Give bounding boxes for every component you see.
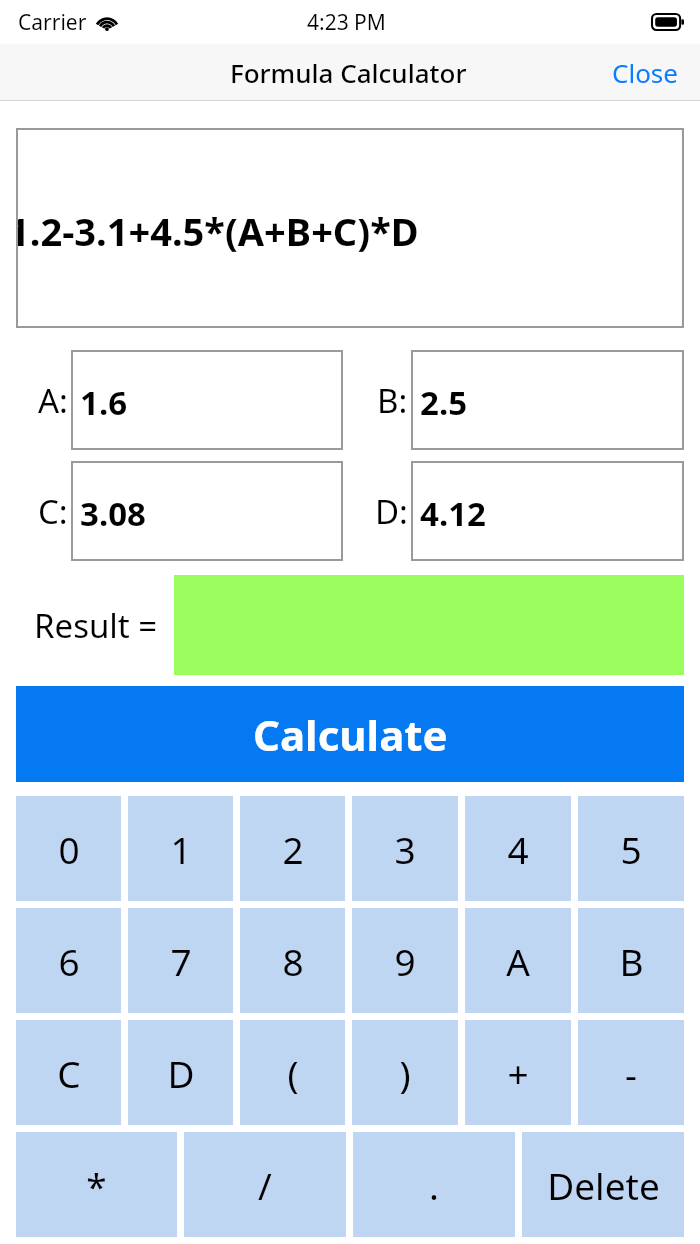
button[interactable]: / — [184, 1132, 346, 1237]
staticText: * — [86, 1160, 107, 1210]
staticText: A — [506, 936, 530, 986]
button[interactable]: 2.5 — [411, 350, 684, 450]
staticText: B: — [377, 378, 408, 423]
button[interactable]: * — [16, 1132, 177, 1237]
staticText: 3 — [394, 824, 416, 874]
staticText: C — [57, 1048, 81, 1098]
staticText: Formula Calculator — [230, 55, 467, 90]
button[interactable]: ) — [352, 1020, 458, 1125]
button[interactable]: 8 — [240, 908, 345, 1013]
button[interactable]: 1.6 — [71, 350, 343, 450]
button[interactable]: 9 — [352, 908, 458, 1013]
staticText: 7 — [170, 936, 192, 986]
button[interactable]: D — [128, 1020, 233, 1125]
button[interactable]: 2 — [240, 796, 345, 901]
staticText: 4 — [507, 824, 529, 874]
staticText: 4:23 PM — [307, 8, 386, 37]
button[interactable]: 1 — [128, 796, 233, 901]
button[interactable]: C — [16, 1020, 121, 1125]
staticText: ( — [287, 1048, 299, 1098]
button[interactable]: Delete — [522, 1132, 684, 1237]
staticText: / — [258, 1160, 272, 1210]
staticText: 5 — [620, 824, 642, 874]
staticText: 4.12 — [420, 491, 486, 536]
staticText: 6 — [58, 936, 80, 986]
staticText: 3.08 — [80, 491, 146, 536]
staticText: 8 — [282, 936, 304, 986]
staticText: 2.5 — [420, 380, 468, 425]
staticText: 9 — [394, 936, 416, 986]
staticText: B — [619, 936, 644, 986]
button[interactable]: Close — [590, 45, 700, 100]
button[interactable]: 5 — [578, 796, 684, 901]
button[interactable]: . — [353, 1132, 515, 1237]
button[interactable]: 1.2-3.1+4.5*(A+B+C)*D — [16, 128, 684, 328]
button[interactable]: + — [465, 1020, 571, 1125]
staticText: Result = — [34, 603, 158, 648]
staticText: 1.6 — [80, 380, 128, 425]
staticText: C: — [38, 489, 68, 534]
staticText: D — [167, 1048, 195, 1098]
button[interactable]: Calculate — [16, 686, 684, 782]
button[interactable]: B — [578, 908, 684, 1013]
button[interactable]: 0 — [16, 796, 121, 901]
staticText: 1.2-3.1+4.5*(A+B+C)*D — [16, 205, 419, 257]
button[interactable]: 4 — [465, 796, 571, 901]
staticText: 2 — [282, 824, 304, 874]
staticText: Carrier — [18, 8, 87, 37]
staticText: Delete — [547, 1160, 660, 1210]
button[interactable]: 4.12 — [411, 461, 684, 561]
staticText: Calculate — [253, 706, 448, 763]
button[interactable]: 6 — [16, 908, 121, 1013]
staticText: 1 — [170, 824, 192, 874]
button[interactable]: A — [465, 908, 571, 1013]
button[interactable]: - — [578, 1020, 684, 1125]
button[interactable]: 7 — [128, 908, 233, 1013]
staticText: . — [429, 1160, 439, 1210]
button[interactable]: ( — [240, 1020, 345, 1125]
button[interactable]: 3 — [352, 796, 458, 901]
staticText: - — [625, 1048, 637, 1098]
staticText: + — [507, 1048, 529, 1098]
button[interactable]: 3.08 — [71, 461, 343, 561]
staticText: D: — [375, 489, 408, 534]
staticText: A: — [38, 378, 68, 423]
staticText: ) — [399, 1048, 411, 1098]
staticText: Close — [612, 55, 678, 90]
staticText: 0 — [58, 824, 80, 874]
